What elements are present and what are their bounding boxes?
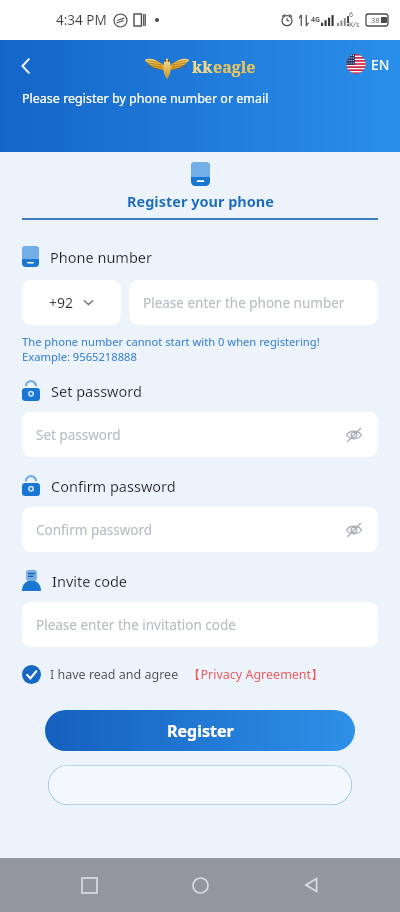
button[interactable]: Please enter the invitation code bbox=[22, 602, 378, 647]
staticText: Register bbox=[167, 720, 234, 742]
button[interactable]: Register your phone bbox=[127, 191, 274, 211]
staticText: 【Privacy Agreement】 bbox=[188, 666, 324, 683]
staticText: 38 bbox=[371, 15, 380, 25]
button[interactable]: Show password bbox=[344, 520, 364, 540]
staticText: The phone number cannot start with 0 whe… bbox=[22, 334, 320, 349]
staticText: eagle bbox=[213, 56, 256, 78]
button[interactable]: Show password bbox=[344, 425, 364, 445]
staticText: 4G bbox=[311, 15, 321, 25]
staticText: Please register by phone number or email bbox=[22, 90, 269, 107]
staticText: Set password bbox=[51, 381, 142, 401]
button[interactable] bbox=[48, 765, 352, 805]
button[interactable]: Back bbox=[8, 48, 44, 84]
button[interactable]: Please enter the phone number bbox=[129, 280, 378, 325]
button[interactable]: EN bbox=[346, 54, 390, 74]
button[interactable]: I have read and agree bbox=[22, 665, 378, 684]
staticText: I have read and agree bbox=[50, 666, 179, 683]
staticText: Example: 9565218888 bbox=[22, 349, 137, 364]
staticText: Register your phone bbox=[127, 191, 274, 211]
staticText: Phone number bbox=[50, 247, 152, 267]
button[interactable]: Register bbox=[45, 710, 355, 751]
staticText: 4:34 PM bbox=[56, 11, 107, 29]
staticText: Set password bbox=[36, 426, 121, 444]
staticText: K/s bbox=[349, 20, 360, 30]
staticText: Please enter the phone number bbox=[143, 294, 345, 312]
staticText: +92 bbox=[49, 293, 74, 312]
staticText: Please enter the invitation code bbox=[36, 616, 236, 634]
staticText: Confirm password bbox=[36, 521, 153, 539]
button[interactable]: +92 bbox=[22, 280, 121, 325]
button[interactable]: Home bbox=[178, 863, 222, 907]
staticText: Invite code bbox=[52, 571, 127, 591]
staticText: Confirm password bbox=[51, 476, 176, 496]
button[interactable]: 【Privacy Agreement】 bbox=[188, 666, 324, 683]
staticText: 6 bbox=[349, 10, 354, 20]
button[interactable]: Back bbox=[289, 863, 333, 907]
staticText: EN bbox=[371, 55, 390, 74]
staticText: kk bbox=[192, 56, 213, 78]
button[interactable]: Recents bbox=[67, 863, 111, 907]
button[interactable]: Set password bbox=[22, 412, 378, 457]
button[interactable]: Confirm password bbox=[22, 507, 378, 552]
